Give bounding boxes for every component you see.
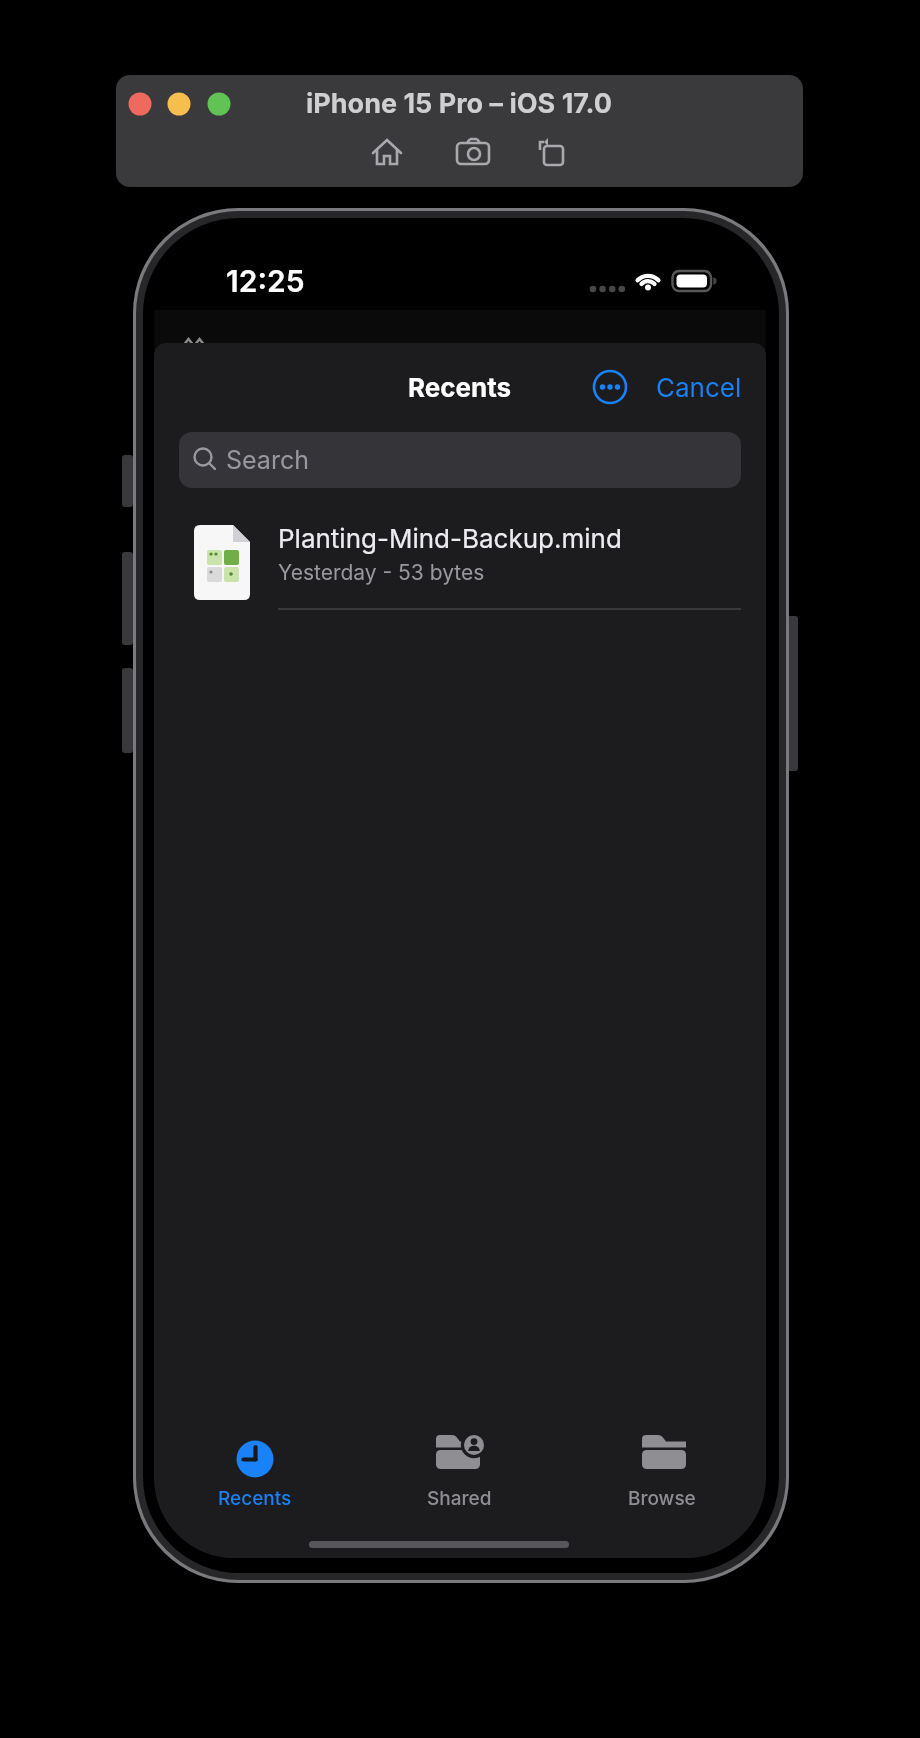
staticText: Recents <box>408 372 512 403</box>
button[interactable]: Cancel <box>649 367 749 407</box>
button[interactable]: Browse <box>602 1431 722 1511</box>
staticText: iPhone 15 Pro – iOS 17.0 <box>306 87 613 120</box>
staticText: Search <box>226 445 309 475</box>
button[interactable]: Recents <box>195 1431 315 1511</box>
button[interactable]: Search <box>179 432 741 488</box>
staticText: Cancel <box>656 372 742 403</box>
button[interactable] <box>590 367 630 407</box>
staticText: 12:25 <box>226 263 305 299</box>
button[interactable]: Planting-Mind-Backup.mind <box>179 503 741 623</box>
staticText: Recents <box>218 1487 292 1510</box>
button[interactable]: Shared <box>399 1431 519 1511</box>
staticText: Planting-Mind-Backup.mind <box>278 523 622 554</box>
staticText: Yesterday - 53 bytes <box>278 560 485 585</box>
staticText: Shared <box>427 1487 492 1510</box>
staticText: Browse <box>628 1487 696 1510</box>
